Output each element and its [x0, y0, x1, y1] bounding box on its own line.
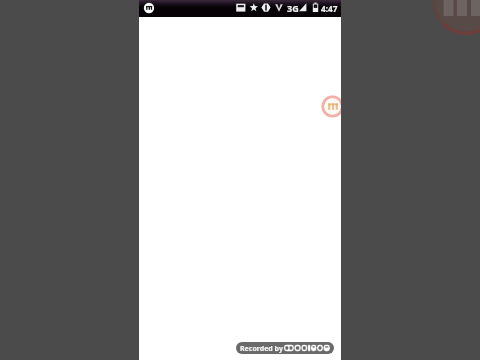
staticText: 3G [287, 2, 299, 14]
button[interactable]: Recorded by [236, 342, 334, 354]
staticText: Recorded by [240, 344, 283, 354]
button[interactable]: Mobizen recorder [321, 95, 341, 118]
staticText: 4:47 [321, 3, 338, 14]
